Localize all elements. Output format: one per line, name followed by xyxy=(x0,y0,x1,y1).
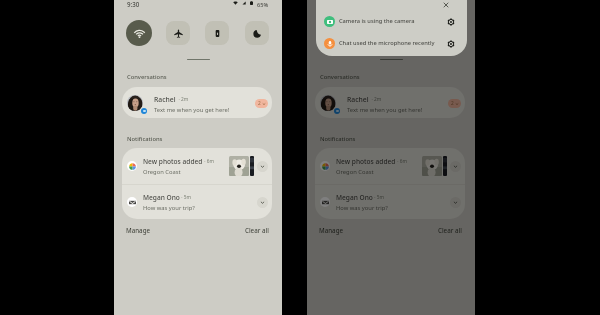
staticText: · 5m xyxy=(373,194,385,201)
button[interactable]: Do not disturb xyxy=(438,21,462,45)
button[interactable]: 2 xyxy=(255,99,268,108)
staticText: How was your trip? xyxy=(143,204,195,212)
staticText: Oregon Coast xyxy=(336,168,374,176)
staticText: 2 xyxy=(451,100,454,107)
staticText: · 6m xyxy=(203,158,215,165)
button[interactable]: 2 xyxy=(448,99,461,108)
staticText: Oregon Coast xyxy=(143,168,181,176)
staticText: Conversations xyxy=(127,73,167,81)
button[interactable]: Clear all xyxy=(438,226,462,234)
button[interactable]: New photos added xyxy=(122,148,272,184)
button[interactable]: Megan Ono xyxy=(315,185,465,219)
button[interactable]: Airplane mode xyxy=(166,21,190,45)
staticText: Rachel xyxy=(154,95,176,104)
button[interactable]: Close xyxy=(439,0,452,11)
button[interactable]: Rachel xyxy=(315,87,465,118)
button[interactable]: Flashlight xyxy=(398,21,422,45)
staticText: 9:30 xyxy=(127,0,140,8)
staticText: Text me when you get here! xyxy=(154,106,230,114)
button[interactable]: Wi-Fi xyxy=(319,20,345,46)
button[interactable]: Expand xyxy=(450,161,461,172)
button[interactable]: Do not disturb xyxy=(245,21,269,45)
staticText: How was your trip? xyxy=(336,204,388,212)
staticText: Camera is using the camera xyxy=(339,17,415,25)
button[interactable]: Manage xyxy=(126,226,151,234)
staticText: Chat used the microphone recently xyxy=(339,39,435,47)
button[interactable]: Expand xyxy=(450,197,461,208)
staticText: Text me when you get here! xyxy=(347,106,423,114)
button[interactable]: Chat used the microphone recently xyxy=(316,33,467,53)
staticText: New photos added xyxy=(143,157,203,166)
button[interactable]: Settings xyxy=(444,37,457,50)
staticText: 65% xyxy=(257,1,269,9)
staticText: Notifications xyxy=(127,135,163,143)
button[interactable]: Expand xyxy=(257,197,268,208)
staticText: Conversations xyxy=(320,73,360,81)
button[interactable]: Settings xyxy=(444,15,457,28)
button[interactable]: Clear all xyxy=(245,226,269,234)
staticText: Megan Ono xyxy=(336,193,373,202)
button[interactable]: Expand xyxy=(257,161,268,172)
staticText: 2 xyxy=(258,100,261,107)
button[interactable]: Camera is using the camera xyxy=(316,11,467,31)
staticText: · 5m xyxy=(180,194,192,201)
staticText: · 2m xyxy=(369,96,382,103)
button[interactable]: Flashlight xyxy=(205,21,229,45)
staticText: New photos added xyxy=(336,157,396,166)
button[interactable]: New photos added xyxy=(315,148,465,184)
button[interactable]: Rachel xyxy=(122,87,272,118)
button[interactable]: Wi-Fi xyxy=(126,20,152,46)
staticText: Rachel xyxy=(347,95,369,104)
button[interactable]: Manage xyxy=(319,226,344,234)
button[interactable]: Megan Ono xyxy=(122,185,272,219)
staticText: · 2m xyxy=(176,96,189,103)
staticText: Megan Ono xyxy=(143,193,180,202)
staticText: · 6m xyxy=(396,158,408,165)
staticText: Notifications xyxy=(320,135,356,143)
button[interactable]: Airplane mode xyxy=(359,21,383,45)
